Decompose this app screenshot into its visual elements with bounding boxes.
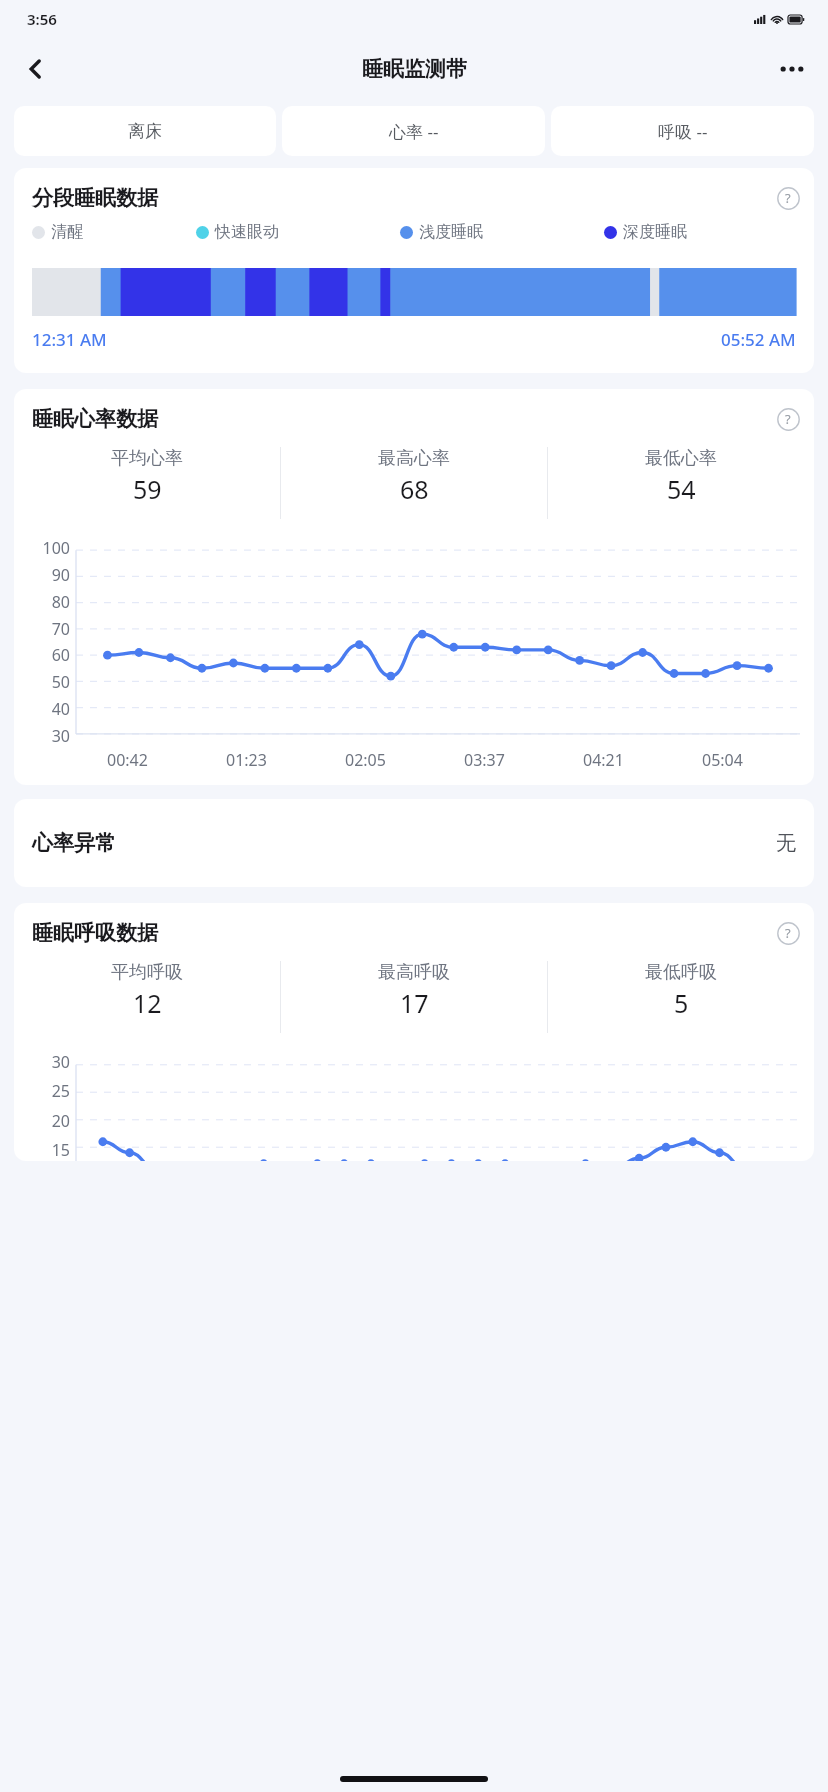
button[interactable]: 心率 -- <box>282 106 545 156</box>
staticText: 15 <box>51 1139 70 1161</box>
staticText: 5 <box>674 986 689 1020</box>
button[interactable]: 离床 <box>14 106 276 156</box>
staticText: 心率 -- <box>389 120 439 143</box>
staticText: 04:21 <box>583 749 624 771</box>
staticText: 清醒 <box>51 222 83 242</box>
staticText: 12:31 AM <box>32 328 107 351</box>
staticText: 02:05 <box>345 749 386 771</box>
staticText: 30 <box>51 725 70 747</box>
button[interactable]: Help <box>772 917 804 949</box>
staticText: 最高心率 <box>378 447 450 470</box>
button[interactable]: Help <box>772 403 804 435</box>
button[interactable]: 呼吸 -- <box>551 106 814 156</box>
staticText: 30 <box>51 1051 70 1073</box>
button[interactable]: Back <box>12 45 60 93</box>
button[interactable]: More options <box>768 45 816 93</box>
staticText: 睡眠呼吸数据 <box>32 920 158 946</box>
staticText: 20 <box>51 1110 70 1132</box>
staticText: 睡眠监测带 <box>362 56 467 82</box>
staticText: 3:56 <box>27 9 57 29</box>
staticText: 心率异常 <box>32 830 116 856</box>
staticText: 17 <box>400 986 429 1020</box>
button[interactable]: 心率异常 <box>14 799 814 887</box>
staticText: 05:52 AM <box>721 328 796 351</box>
staticText: 01:23 <box>226 749 267 771</box>
staticText: 最低呼吸 <box>645 961 717 984</box>
staticText: 05:04 <box>702 749 743 771</box>
staticText: 100 <box>42 537 70 559</box>
staticText: ? <box>785 924 791 942</box>
staticText: 睡眠心率数据 <box>32 406 158 432</box>
staticText: 浅度睡眠 <box>419 222 483 242</box>
staticText: ? <box>785 410 791 428</box>
staticText: 最高呼吸 <box>378 961 450 984</box>
staticText: 90 <box>51 564 70 586</box>
staticText: 54 <box>667 472 696 506</box>
staticText: 12 <box>133 986 162 1020</box>
staticText: 68 <box>400 472 429 506</box>
staticText: 70 <box>51 618 70 640</box>
staticText: 25 <box>51 1080 70 1102</box>
staticText: 03:37 <box>464 749 505 771</box>
staticText: 00:42 <box>107 749 148 771</box>
staticText: 呼吸 -- <box>658 120 708 143</box>
staticText: 无 <box>776 831 796 856</box>
staticText: ? <box>785 189 791 207</box>
staticText: 离床 <box>128 121 162 142</box>
staticText: 深度睡眠 <box>623 222 687 242</box>
staticText: 最低心率 <box>645 447 717 470</box>
staticText: 80 <box>51 591 70 613</box>
staticText: 平均心率 <box>111 447 183 470</box>
staticText: 分段睡眠数据 <box>32 185 158 211</box>
staticText: 59 <box>133 472 162 506</box>
button[interactable]: Help <box>772 182 804 214</box>
staticText: 快速眼动 <box>215 222 279 242</box>
staticText: 50 <box>51 671 70 693</box>
staticText: 平均呼吸 <box>111 961 183 984</box>
staticText: 60 <box>51 644 70 666</box>
staticText: 40 <box>51 698 70 720</box>
